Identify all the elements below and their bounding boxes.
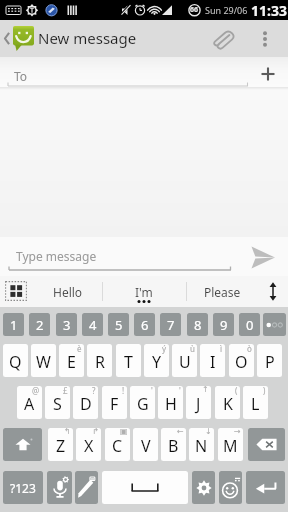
staticText: Z (56, 435, 66, 457)
staticText: 0 (246, 316, 254, 334)
staticText: Hello (53, 284, 83, 300)
button[interactable]: Space (102, 471, 188, 504)
staticText: 11:33 (251, 1, 287, 20)
button[interactable]: F (102, 386, 127, 419)
button[interactable]: 8 (187, 313, 208, 336)
button[interactable]: J (186, 386, 211, 419)
button[interactable]: 1 (3, 313, 24, 336)
button[interactable]: 3 (56, 313, 77, 336)
button[interactable]: P (257, 344, 282, 377)
staticText: I'm (135, 284, 153, 300)
button[interactable]: I'm (104, 276, 184, 307)
staticText: ↓ (205, 428, 212, 436)
staticText: ? (92, 386, 96, 396)
staticText: ' (179, 386, 181, 396)
button[interactable]: K (215, 386, 240, 419)
button[interactable]: New message (0, 20, 228, 57)
button[interactable]: O (229, 344, 254, 377)
staticText: T (124, 351, 133, 373)
button[interactable]: Attach (204, 20, 240, 57)
staticText: P (265, 351, 275, 373)
staticText: E (67, 351, 76, 373)
staticText: 6 (141, 316, 149, 334)
button[interactable]: G (130, 386, 155, 419)
button[interactable]: N (189, 428, 214, 461)
button[interactable]: S (45, 386, 70, 419)
staticText: → (234, 428, 241, 436)
button[interactable]: R (87, 344, 112, 377)
button[interactable]: Q (3, 344, 28, 377)
button[interactable]: M (218, 428, 243, 461)
staticText: F (110, 393, 119, 415)
button[interactable]: Settings (192, 471, 215, 504)
staticText: D (80, 393, 92, 415)
button[interactable]: W (31, 344, 56, 377)
staticText: ò (247, 344, 252, 354)
staticText: £ (63, 386, 68, 396)
button[interactable]: Shift (3, 428, 42, 461)
button[interactable]: Emoji (219, 471, 242, 504)
staticText: Q (9, 351, 22, 373)
staticText: ↰ (64, 428, 71, 436)
button[interactable]: 9 (213, 313, 234, 336)
staticText: C (112, 435, 123, 457)
button[interactable]: More keyboard pages (263, 313, 286, 336)
button[interactable]: D (73, 386, 98, 419)
button[interactable]: H (158, 386, 183, 419)
button[interactable]: Resize keyboard (262, 280, 284, 303)
staticText: S (53, 393, 62, 415)
button[interactable]: A (17, 386, 42, 419)
staticText: 3 (63, 316, 71, 334)
staticText: O (235, 351, 248, 373)
button[interactable]: Enter (246, 471, 285, 504)
staticText: 1 (10, 316, 18, 334)
button[interactable]: B (161, 428, 186, 461)
staticText: ù (190, 344, 195, 354)
button[interactable]: C (105, 428, 130, 461)
staticText: M (223, 435, 238, 457)
staticText: R (95, 351, 105, 373)
staticText: J (196, 393, 201, 415)
button[interactable]: More options (250, 20, 280, 57)
button[interactable]: Voice input (47, 471, 72, 504)
staticText: L (251, 393, 260, 415)
button[interactable]: E (59, 344, 84, 377)
staticText: New message (38, 28, 137, 48)
button[interactable]: 6 (134, 313, 155, 336)
staticText: ?123 (10, 480, 36, 496)
button[interactable]: T (116, 344, 141, 377)
staticText: Sun 29/06 (205, 4, 248, 16)
staticText: ← (177, 428, 184, 436)
button[interactable]: 7 (160, 313, 181, 336)
button[interactable]: L (243, 386, 268, 419)
button[interactable]: I (200, 344, 225, 377)
staticText: ↑ (202, 386, 209, 394)
button[interactable]: Symbols (3, 471, 43, 504)
button[interactable]: U (172, 344, 197, 377)
staticText: 5 (115, 316, 123, 334)
button[interactable]: X (76, 428, 101, 461)
button[interactable]: Backspace (248, 428, 285, 461)
button[interactable]: Z (48, 428, 73, 461)
button[interactable]: 0 (239, 313, 260, 336)
button[interactable]: 2 (29, 313, 50, 336)
button[interactable]: Y (144, 344, 169, 377)
staticText: Type message (16, 248, 97, 264)
button[interactable]: Please (188, 276, 256, 307)
staticText: N (195, 435, 208, 457)
staticText: 66 (190, 5, 199, 15)
staticText: ▣ (120, 428, 128, 436)
button[interactable]: 4 (82, 313, 103, 336)
button[interactable]: Add recipient (251, 61, 284, 87)
staticText: 7 (167, 316, 175, 334)
button[interactable]: Send (243, 237, 283, 277)
button[interactable]: V (133, 428, 158, 461)
staticText: ) (263, 386, 266, 396)
staticText: ! (122, 386, 125, 396)
button[interactable]: Handwriting (75, 471, 98, 504)
staticText: 9 (220, 316, 228, 334)
button[interactable]: Hello (34, 276, 101, 307)
button[interactable]: 5 (108, 313, 129, 336)
staticText: K (223, 393, 233, 415)
button[interactable]: Keyboard menu (5, 281, 27, 301)
